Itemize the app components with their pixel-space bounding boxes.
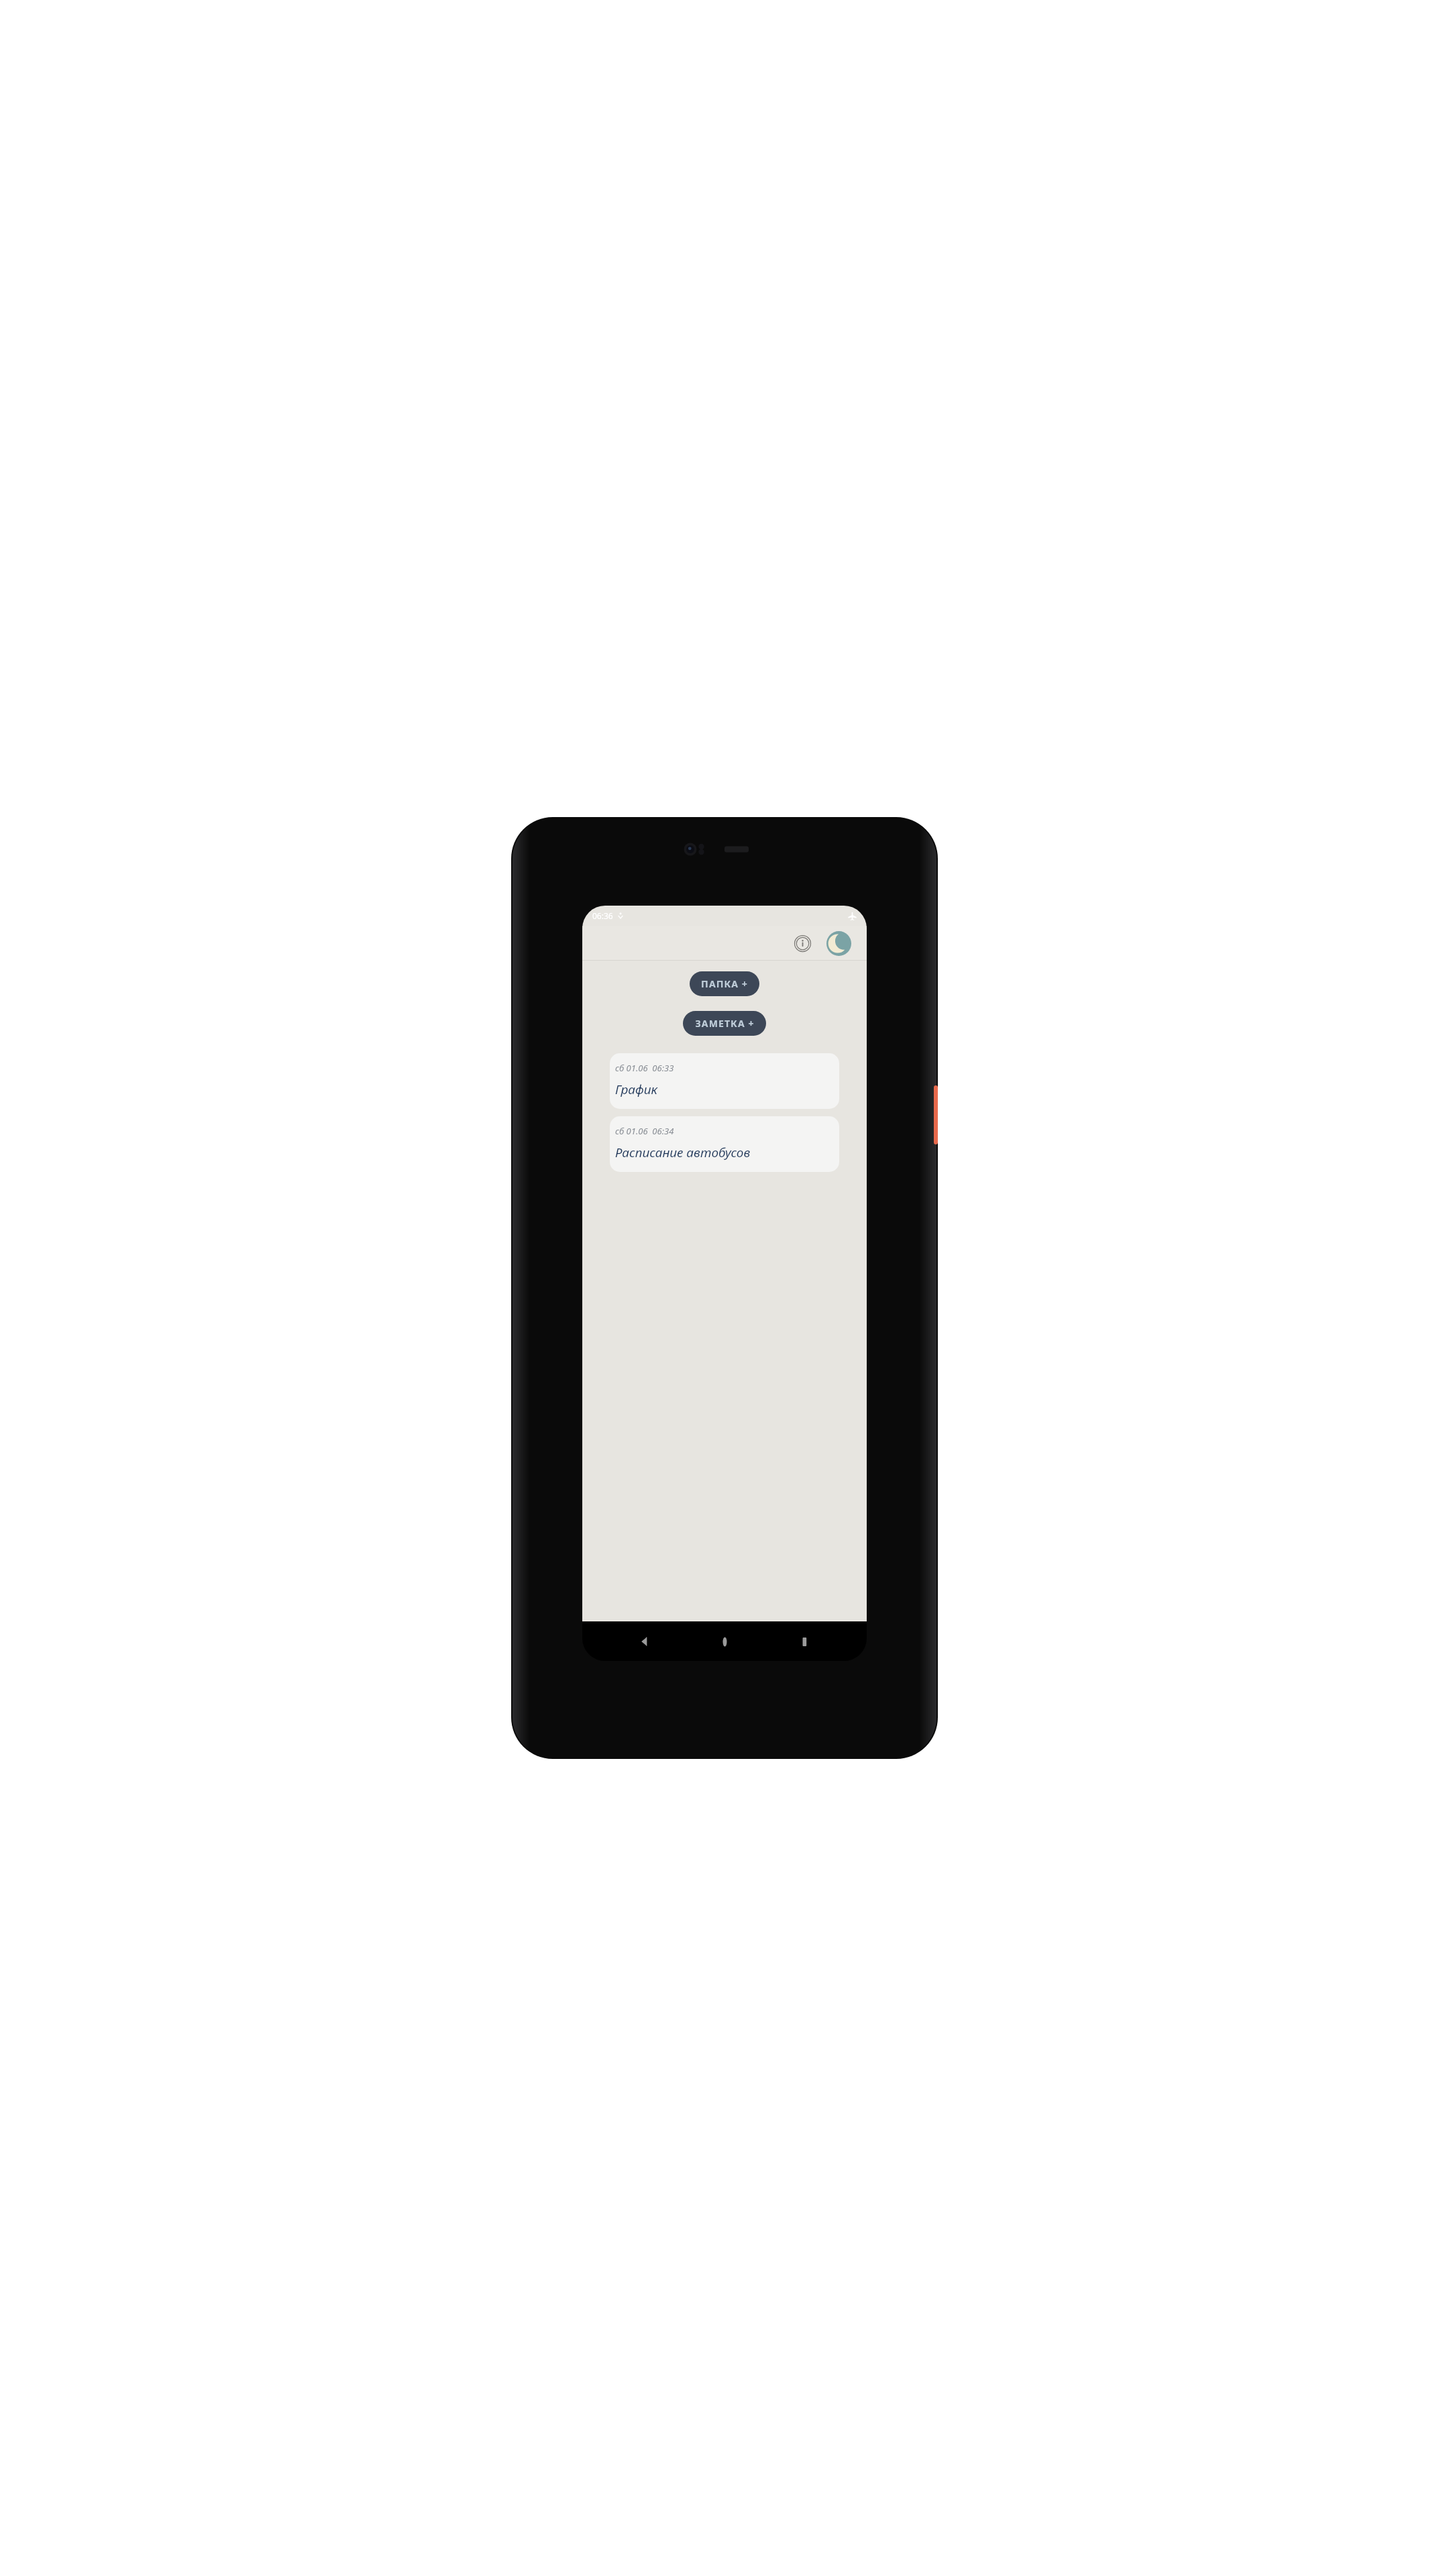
button[interactable]: Info <box>788 929 816 957</box>
staticText: сб 01.06 06:33 <box>615 1062 674 1074</box>
staticText: сб 01.06 06:34 <box>615 1125 674 1137</box>
staticText: ЗАМЕТКА + <box>695 1017 755 1030</box>
staticText: График <box>615 1081 658 1098</box>
button[interactable]: сб 01.06 06:34 <box>610 1116 839 1172</box>
button[interactable]: Back <box>627 1624 662 1659</box>
button[interactable]: Recent apps <box>787 1624 822 1659</box>
staticText: 06:36 <box>592 910 613 921</box>
button[interactable]: Night mode <box>824 929 853 957</box>
staticText: Расписание автобусов <box>615 1144 751 1161</box>
button[interactable]: сб 01.06 06:33 <box>610 1053 839 1109</box>
button[interactable]: ПАПКА + <box>690 971 759 996</box>
button[interactable]: ЗАМЕТКА + <box>683 1011 766 1036</box>
staticText: ПАПКА + <box>701 977 748 990</box>
button[interactable]: Home <box>707 1624 742 1659</box>
